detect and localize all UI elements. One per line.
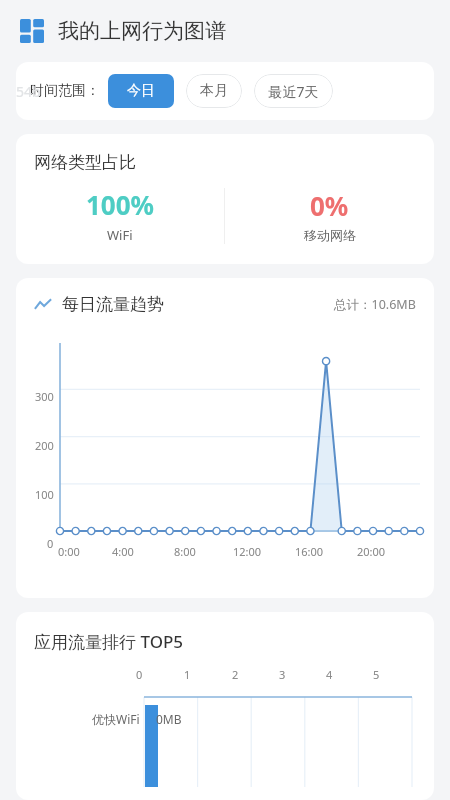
staticText: 200 — [35, 438, 54, 453]
staticText: 本月 — [200, 82, 228, 100]
staticText: 1 — [184, 667, 191, 682]
staticText: 3 — [279, 667, 286, 682]
staticText: 最近7天 — [268, 82, 319, 101]
staticText: 300 — [35, 389, 54, 404]
staticText: 0MB — [156, 711, 182, 727]
button[interactable]: Dashboard — [20, 19, 44, 43]
button[interactable]: 最近7天 — [254, 74, 333, 108]
staticText: 移动网络 — [304, 227, 356, 243]
staticText: 优快WiFi — [92, 711, 140, 727]
button[interactable]: 今日 — [108, 74, 174, 108]
staticText: 20:00 — [357, 544, 386, 559]
staticText: 16:00 — [295, 544, 324, 559]
staticText: 100 — [35, 487, 54, 502]
staticText: 今日 — [127, 82, 155, 100]
staticText: 每日流量趋势 — [62, 294, 164, 315]
staticText: 我的上网行为图谱 — [58, 18, 226, 44]
staticText: 4:00 — [112, 544, 134, 559]
staticText: 4 — [326, 667, 333, 682]
staticText: 5 — [373, 667, 380, 682]
staticText: 总计：10.6MB — [334, 296, 416, 313]
button[interactable]: 本月 — [186, 74, 242, 108]
staticText: 12:00 — [233, 544, 262, 559]
staticText: 网络类型占比 — [34, 152, 136, 173]
staticText: 0 — [47, 536, 54, 551]
staticText: 0:00 — [58, 544, 80, 559]
staticText: WiFi — [107, 226, 133, 244]
staticText: 8:00 — [174, 544, 196, 559]
staticText: 0% — [310, 188, 349, 223]
staticText: 时间范围： — [30, 82, 100, 100]
staticText: 100% — [86, 187, 155, 222]
staticText: 0 — [136, 667, 143, 682]
staticText: 2 — [232, 667, 239, 682]
staticText: 54b — [16, 82, 41, 101]
staticText: 应用流量排行 TOP5 — [34, 630, 184, 653]
